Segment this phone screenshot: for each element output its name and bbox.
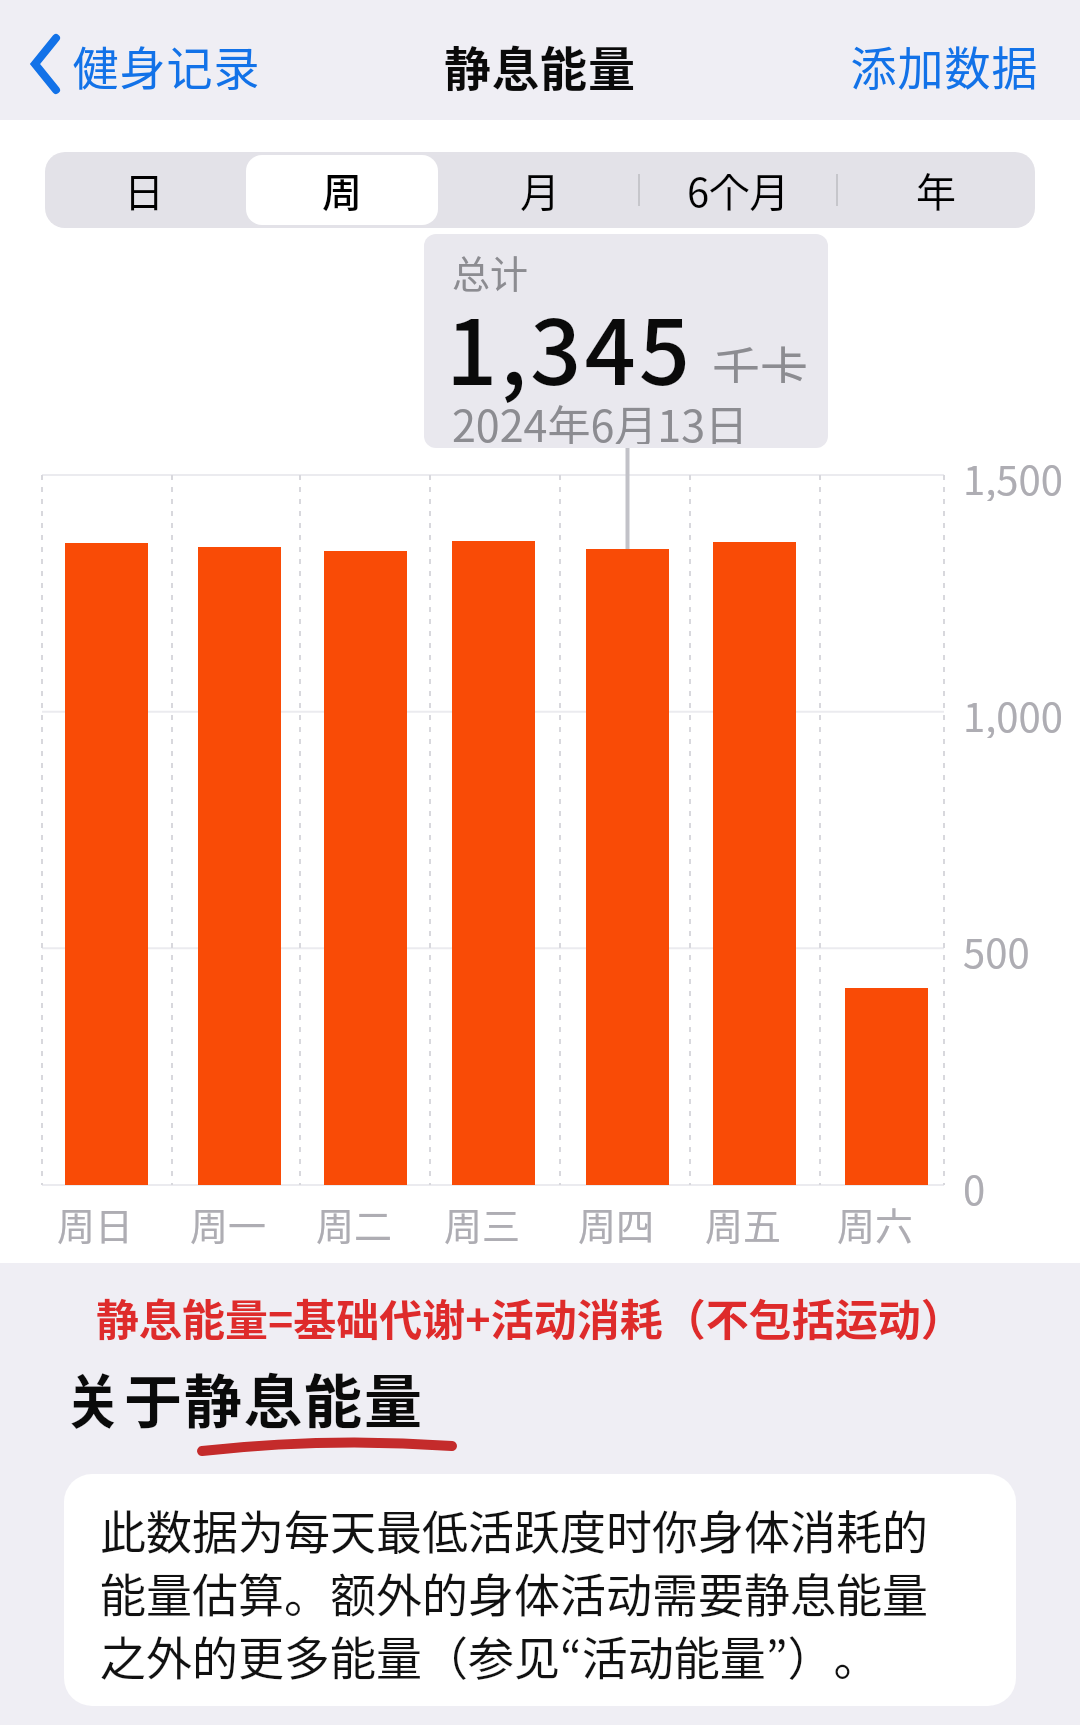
button[interactable]: 添加数据 <box>818 5 1038 125</box>
staticText: 1,345 <box>446 281 694 411</box>
staticText: 周四 <box>578 1196 655 1248</box>
staticText: 周六 <box>837 1196 914 1248</box>
staticText: 0 <box>963 1159 986 1211</box>
button[interactable]: 月 <box>441 152 639 228</box>
staticText: 关于静息能量 <box>64 1356 425 1436</box>
staticText: 静息能量=基础代谢+活动消耗（不包括运动） <box>96 1286 964 1342</box>
staticText: 日 <box>124 161 164 219</box>
button[interactable]: 日 <box>45 152 243 228</box>
staticText: 月 <box>520 161 560 219</box>
staticText: 年 <box>916 161 956 219</box>
staticText: 添加数据 <box>850 32 1038 99</box>
staticText: 周日 <box>57 1196 134 1248</box>
button[interactable]: 年 <box>837 152 1035 228</box>
staticText: 周五 <box>705 1196 782 1248</box>
staticText: 1,500 <box>963 449 1063 501</box>
staticText: 健身记录 <box>72 32 260 99</box>
staticText: 静息能量 <box>444 31 636 99</box>
staticText: 此数据为每天最低活跃度时你身体消耗的 能量估算。额外的身体活动需要静息能量 之外… <box>100 1496 928 1689</box>
staticText: 周 <box>322 161 362 219</box>
staticText: 千卡 <box>712 331 809 383</box>
button[interactable]: 周 <box>243 152 441 228</box>
staticText: 周三 <box>444 1196 521 1248</box>
staticText: 2024年6月13日 <box>452 392 749 444</box>
staticText: 1,000 <box>963 686 1063 738</box>
staticText: 500 <box>963 922 1030 974</box>
button[interactable]: 健身记录 <box>22 0 282 124</box>
staticText: 周一 <box>190 1196 267 1248</box>
staticText: 6个月 <box>687 161 790 219</box>
staticText: 周二 <box>316 1196 393 1248</box>
staticText: 总计 <box>452 244 529 292</box>
button[interactable]: 6个月 <box>639 152 837 228</box>
